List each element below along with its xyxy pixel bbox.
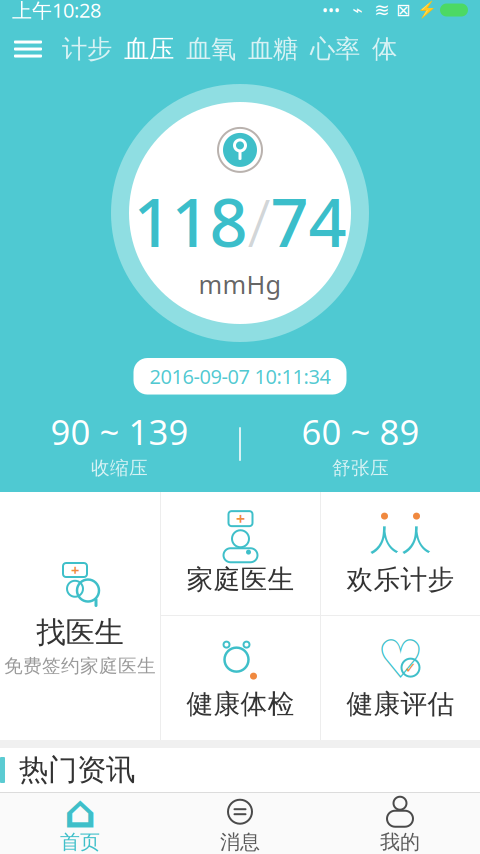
button[interactable]: 计步 [56, 29, 118, 68]
staticText: 心率 [310, 33, 360, 64]
staticText: 欢乐计步 [346, 563, 454, 596]
staticText: 健康体检 [186, 688, 294, 720]
staticText: ✓ [404, 659, 416, 676]
button[interactable]: 2016-09-07 10:11:34 [133, 358, 346, 395]
staticText: 上午10:28 [12, 0, 101, 23]
button[interactable]: + [161, 492, 320, 615]
staticText: 计步 [62, 33, 112, 64]
button[interactable]: 心率 [304, 29, 366, 68]
staticText: 健康评估 [346, 688, 454, 720]
staticText: 首页 [60, 830, 100, 854]
button[interactable]: 健康体检 [161, 616, 320, 740]
staticText: 免费签约家庭医生 [4, 655, 156, 677]
button[interactable]: 我的 [320, 791, 480, 854]
staticText: 人 [402, 522, 431, 558]
staticText: 舒张压 [332, 457, 389, 479]
staticText: 消息 [220, 830, 260, 854]
staticText: 血糖 [248, 33, 298, 64]
staticText: 我的 [380, 830, 420, 854]
staticText: 2016-09-07 10:11:34 [149, 363, 330, 390]
staticText: 找医生 [36, 614, 123, 650]
button[interactable]: 消息 [160, 791, 320, 854]
staticText: ⚡ [417, 1, 437, 19]
staticText: 热门资讯 [19, 752, 135, 788]
staticText: + [236, 508, 245, 529]
button[interactable]: 血压 [118, 29, 180, 68]
button[interactable]: 血糖 [242, 29, 304, 68]
button[interactable]: ⌂ [0, 791, 160, 854]
staticText: 118 [133, 177, 247, 265]
staticText: 家庭医生 [186, 563, 294, 596]
staticText: ⊠ [390, 0, 417, 20]
staticText: ≋ [374, 0, 390, 21]
staticText: mmHg [198, 267, 281, 301]
staticText: ♡ [376, 629, 424, 690]
button[interactable]: 体 [366, 29, 403, 68]
staticText: 血压 [124, 33, 174, 64]
staticText: 血氧 [186, 33, 236, 64]
button[interactable]: 血氧 [180, 29, 242, 68]
button[interactable]: + [0, 492, 160, 740]
staticText: ⌁ [340, 0, 374, 20]
staticText: 体 [372, 33, 397, 64]
button[interactable]: 人 [321, 492, 480, 615]
staticText: 收缩压 [91, 457, 148, 479]
staticText: ••• [322, 0, 340, 21]
button[interactable]: ♡ [321, 616, 480, 740]
button[interactable]: Menu [0, 30, 56, 67]
staticText: 90 ~ 139 [50, 409, 188, 455]
staticText: 人 [370, 522, 399, 558]
staticText: ⌂ [64, 786, 96, 837]
staticText: 74 [270, 177, 346, 265]
staticText: / [247, 177, 270, 265]
staticText: 60 ~ 89 [301, 409, 419, 455]
staticText: + [71, 560, 79, 580]
